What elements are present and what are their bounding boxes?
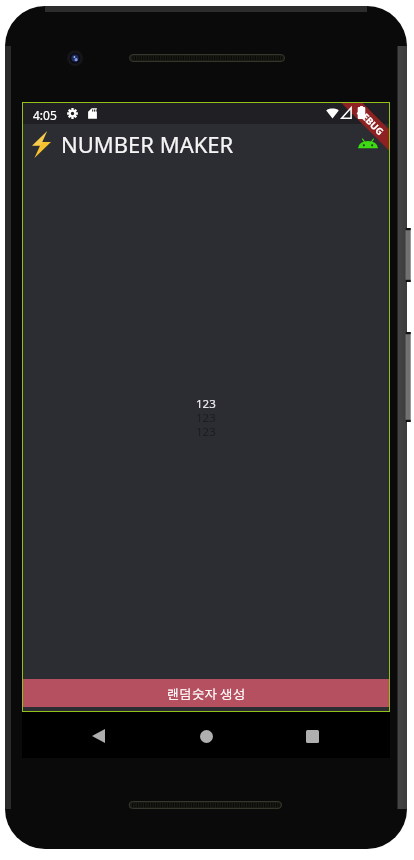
- staticText: 랜덤숫자 생성: [167, 685, 246, 702]
- staticText: NUMBER MAKER: [61, 129, 234, 159]
- button[interactable]: Android: [355, 131, 381, 157]
- staticText: 4:05: [33, 107, 57, 123]
- staticText: 123: [196, 396, 216, 410]
- staticText: 123: [196, 424, 216, 438]
- button[interactable]: Back: [80, 718, 116, 754]
- button[interactable]: Recent apps: [294, 718, 330, 754]
- staticText: 123: [196, 410, 216, 424]
- button[interactable]: Home: [188, 718, 224, 754]
- staticText: DEBUG: [354, 106, 387, 138]
- button[interactable]: 랜덤숫자 생성: [23, 679, 389, 707]
